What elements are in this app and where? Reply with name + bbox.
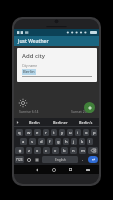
staticText: i: [77, 130, 79, 136]
button[interactable]: e: [34, 129, 41, 136]
button[interactable]: t: [51, 129, 57, 136]
button[interactable]: p: [91, 129, 97, 136]
staticText: Berlin: [29, 120, 40, 125]
button[interactable]: i: [75, 129, 81, 136]
button[interactable]: y: [59, 129, 65, 136]
button[interactable]: l: [87, 138, 93, 145]
staticText: y: [61, 130, 64, 136]
button[interactable]: z: [26, 147, 32, 154]
staticText: .: [82, 157, 84, 163]
staticText: e: [36, 130, 39, 136]
button[interactable]: Backspace: [88, 147, 98, 154]
button[interactable]: Home: [45, 165, 62, 174]
button[interactable]: Settings: [33, 155, 41, 164]
button[interactable]: o: [83, 129, 89, 136]
button[interactable]: Back: [28, 165, 45, 174]
staticText: r: [45, 130, 47, 136]
button[interactable]: .: [79, 155, 87, 164]
button[interactable]: Berlin's: [73, 118, 99, 126]
staticText: g: [57, 139, 60, 145]
staticText: Berliner: [53, 120, 68, 125]
staticText: q: [18, 130, 21, 136]
button[interactable]: Shift: [15, 147, 24, 154]
button[interactable]: x: [34, 147, 41, 154]
button[interactable]: a: [20, 138, 27, 145]
button[interactable]: f: [47, 138, 53, 145]
button[interactable]: Berlin: [21, 118, 47, 126]
staticText: Sunset 20:35: [71, 109, 92, 114]
button[interactable]: n: [70, 147, 77, 154]
button[interactable]: d: [38, 138, 45, 145]
staticText: w: [27, 130, 31, 136]
button[interactable]: Berliner: [47, 118, 73, 126]
staticText: English: [55, 158, 66, 162]
button[interactable]: Emoji: [25, 155, 33, 164]
button[interactable]: b: [61, 147, 68, 154]
staticText: d: [40, 139, 43, 145]
staticText: x: [36, 148, 39, 154]
staticText: l: [89, 139, 91, 145]
button[interactable]: Symbols: [15, 156, 24, 163]
button[interactable]: j: [71, 138, 77, 145]
staticText: j: [73, 139, 75, 145]
staticText: Berlin's: [79, 120, 93, 125]
button[interactable]: Recent apps: [62, 165, 79, 174]
staticText: t: [53, 130, 55, 136]
button[interactable]: s: [29, 138, 36, 145]
staticText: Berlin: [23, 69, 35, 75]
button[interactable]: h: [63, 138, 69, 145]
staticText: z: [28, 148, 30, 154]
staticText: f: [49, 139, 51, 145]
staticText: n: [72, 148, 75, 154]
button[interactable]: c: [43, 147, 50, 154]
button[interactable]: Keyboard: [79, 165, 96, 174]
button[interactable]: k: [79, 138, 85, 145]
staticText: Add city: [22, 52, 45, 60]
button[interactable]: Enter: [88, 156, 98, 163]
button[interactable]: Space: [42, 156, 78, 163]
button[interactable]: q: [16, 129, 23, 136]
button[interactable]: m: [79, 147, 86, 154]
staticText: s: [31, 139, 34, 145]
button[interactable]: w: [25, 129, 32, 136]
staticText: h: [65, 139, 68, 145]
button[interactable]: v: [52, 147, 59, 154]
button[interactable]: More suggestions: [14, 118, 21, 126]
staticText: c: [45, 148, 48, 154]
staticText: Sunrise 6:14: [19, 109, 39, 114]
staticText: City name: [22, 64, 37, 68]
staticText: o: [85, 130, 88, 136]
button[interactable]: u: [67, 129, 73, 136]
staticText: k: [81, 139, 84, 145]
staticText: p: [93, 130, 96, 136]
staticText: u: [69, 130, 72, 136]
staticText: b: [63, 148, 66, 154]
staticText: Just Weather: [18, 38, 49, 45]
staticText: m: [81, 148, 85, 154]
staticText: ?123: [16, 158, 23, 162]
staticText: v: [54, 148, 57, 154]
button[interactable]: Add city: [84, 102, 95, 113]
staticText: a: [22, 139, 25, 145]
button[interactable]: r: [43, 129, 49, 136]
button[interactable]: Just Weather: [14, 36, 99, 46]
button[interactable]: g: [55, 138, 61, 145]
